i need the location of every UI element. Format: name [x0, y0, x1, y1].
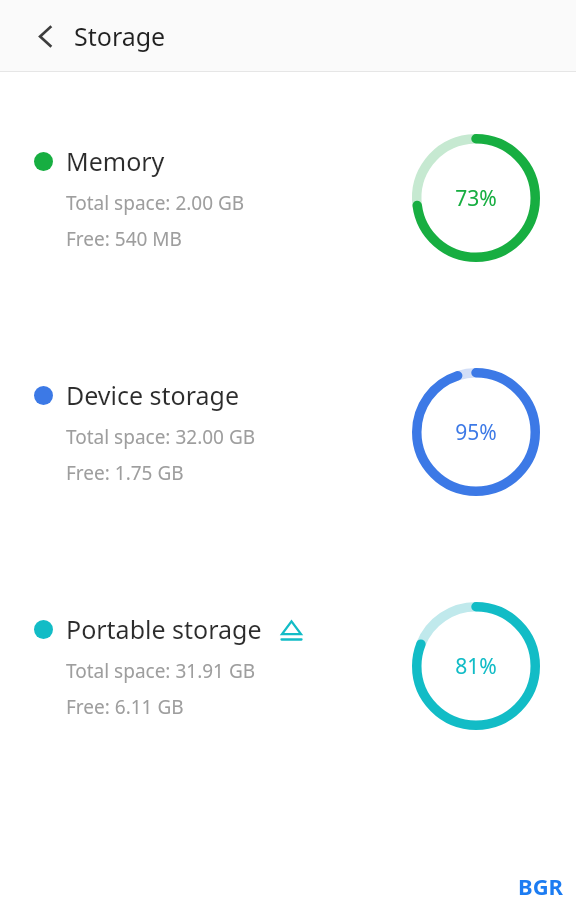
staticText: Portable storage [66, 612, 262, 646]
staticText: Free: 540 MB [66, 226, 182, 252]
staticText: Free: 6.11 GB [66, 694, 184, 720]
button[interactable]: Memory [0, 128, 576, 268]
staticText: Memory [66, 144, 165, 178]
button[interactable]: Back [20, 11, 70, 61]
button[interactable]: Portable storage [0, 596, 576, 736]
staticText: Total space: 2.00 GB [66, 190, 245, 216]
staticText: Total space: 32.00 GB [66, 424, 256, 450]
button[interactable]: Device storage [0, 362, 576, 502]
staticText: Storage [74, 19, 166, 53]
staticText: BGR [518, 871, 563, 901]
staticText: 81% [455, 652, 497, 681]
staticText: Free: 1.75 GB [66, 460, 184, 486]
button[interactable]: Eject portable storage [275, 613, 307, 645]
staticText: Device storage [66, 378, 240, 412]
staticText: 73% [455, 184, 497, 213]
staticText: 95% [455, 418, 497, 447]
staticText: Total space: 31.91 GB [66, 658, 256, 684]
